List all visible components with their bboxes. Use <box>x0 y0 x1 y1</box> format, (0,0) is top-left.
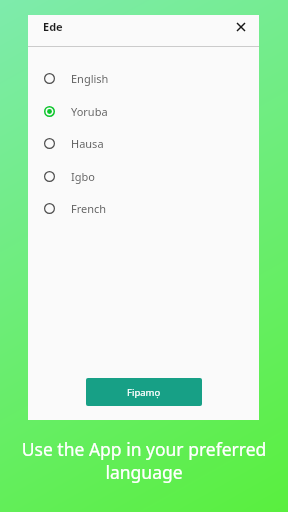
staticText: English <box>71 71 109 86</box>
button[interactable]: Hausa <box>28 127 259 160</box>
button[interactable]: French <box>28 192 259 225</box>
staticText: Use the App in your preferred language <box>19 437 269 484</box>
button[interactable]: English <box>28 62 259 95</box>
staticText: French <box>71 201 107 216</box>
staticText: Yoruba <box>71 104 108 119</box>
staticText: Hausa <box>71 136 104 151</box>
button[interactable]: Close <box>229 15 253 39</box>
staticText: Fipamọ <box>127 386 161 399</box>
button[interactable]: Igbo <box>28 160 259 193</box>
staticText: Ede <box>43 19 63 34</box>
staticText: Igbo <box>71 169 95 184</box>
button[interactable]: Fipamọ <box>86 378 202 406</box>
button[interactable]: Yoruba <box>28 95 259 128</box>
